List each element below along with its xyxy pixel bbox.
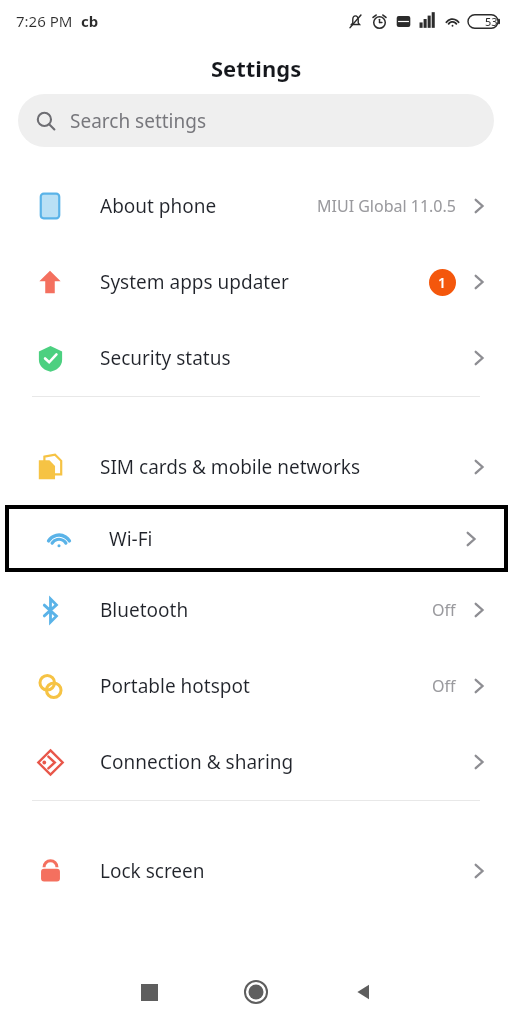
button[interactable]: Home <box>233 969 279 1015</box>
staticText: Settings <box>211 53 302 83</box>
button[interactable]: Lock screen <box>0 833 512 909</box>
button[interactable]: System apps updater <box>0 244 512 320</box>
button[interactable]: About phone <box>0 168 512 244</box>
button[interactable]: Connection & sharing <box>0 724 512 800</box>
staticText: 1 <box>438 273 447 292</box>
staticText: System apps updater <box>100 269 429 295</box>
button[interactable]: Search settings <box>18 94 494 147</box>
staticText: Off <box>432 599 456 621</box>
staticText: Search settings <box>70 108 207 134</box>
staticText: 7:26 PM <box>16 11 73 31</box>
button[interactable]: Bluetooth <box>0 572 512 648</box>
staticText: 53 <box>485 14 498 29</box>
staticText: SIM cards & mobile networks <box>100 454 468 480</box>
staticText: MIUI Global 11.0.5 <box>317 195 456 217</box>
button[interactable]: Back <box>342 971 384 1013</box>
staticText: Wi-Fi <box>109 526 460 552</box>
staticText: Lock screen <box>100 858 468 884</box>
staticText: Security status <box>100 345 468 371</box>
staticText: About phone <box>100 193 317 219</box>
staticText: Bluetooth <box>100 597 432 623</box>
staticText: cb <box>81 11 99 31</box>
button[interactable]: Security status <box>0 320 512 396</box>
button[interactable]: SIM cards & mobile networks <box>0 429 512 505</box>
button[interactable]: Recent apps <box>128 971 170 1013</box>
staticText: Connection & sharing <box>100 749 468 775</box>
button[interactable]: Wi-Fi <box>9 509 504 568</box>
staticText: Off <box>432 675 456 697</box>
staticText: Portable hotspot <box>100 673 432 699</box>
button[interactable]: Portable hotspot <box>0 648 512 724</box>
